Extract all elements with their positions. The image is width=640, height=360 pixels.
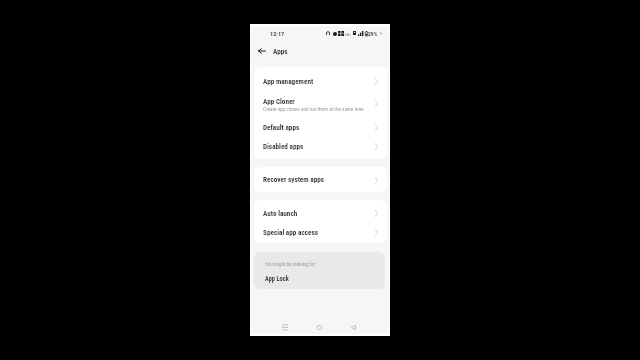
staticText: You might be looking for: [265, 261, 317, 267]
button[interactable]: Auto launch [254, 200, 387, 222]
button[interactable]: Back [254, 43, 270, 59]
button[interactable]: Home [310, 318, 328, 336]
staticText: Apps [273, 47, 288, 55]
staticText: 12:17 [270, 30, 285, 37]
button[interactable]: Disabled apps [254, 142, 387, 159]
button[interactable]: Special app access [254, 221, 387, 243]
button[interactable]: Default apps [254, 123, 387, 142]
staticText: Special app access [263, 228, 318, 236]
staticText: Recover system apps [263, 175, 325, 183]
button[interactable]: App management [254, 67, 387, 96]
button[interactable]: App Cloner [254, 97, 387, 123]
staticText: Create app clones and run them at the sa… [263, 106, 365, 112]
staticText: Disabled apps [263, 142, 304, 150]
staticText: App Cloner [263, 97, 295, 105]
staticText: App Lock [265, 275, 289, 283]
staticText: Auto launch [263, 209, 298, 217]
button[interactable]: App Lock [254, 272, 385, 286]
staticText: 29% [368, 31, 378, 38]
staticText: Default apps [263, 123, 300, 131]
button[interactable]: Recover system apps [254, 167, 387, 192]
button[interactable]: Recent apps [276, 318, 294, 336]
staticText: App management [263, 77, 314, 85]
button[interactable]: Back [344, 318, 362, 336]
